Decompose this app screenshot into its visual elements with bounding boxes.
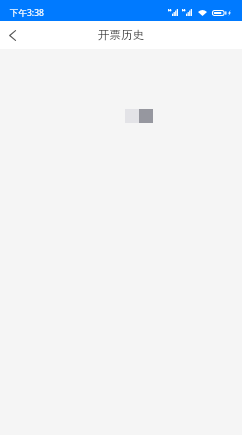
button[interactable]: Back [0,21,24,49]
other: Image placeholder [125,109,153,123]
staticText: 下午3:38 [10,7,44,19]
staticText: 开票历史 [98,28,144,42]
